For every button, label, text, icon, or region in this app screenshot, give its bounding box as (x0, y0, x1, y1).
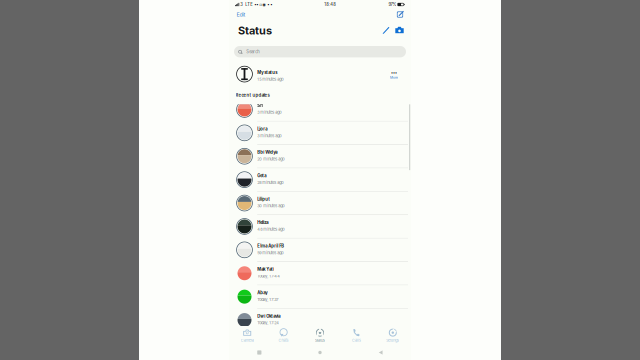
staticText: Status (238, 24, 272, 37)
staticText: Search (246, 49, 259, 54)
staticText: Dwi Oktavia (257, 314, 280, 319)
button[interactable]: Elma April FB (229, 238, 411, 262)
button[interactable]: Sri (229, 98, 411, 121)
staticText: 30 minutes ago (257, 203, 284, 208)
staticText: Chats (279, 338, 289, 343)
button[interactable]: Calls (338, 326, 375, 345)
button[interactable]: Recents (229, 345, 290, 360)
button[interactable]: Dwi Oktavia (229, 309, 411, 332)
staticText: 15 minutes ago (257, 77, 283, 82)
staticText: Today, 17:24 (257, 320, 279, 325)
button[interactable]: Geta (229, 168, 411, 192)
button[interactable]: Settings (375, 326, 411, 345)
button[interactable]: Bbi Widya (229, 145, 411, 168)
staticText: Mak Yati (257, 267, 274, 272)
button[interactable]: Search (234, 46, 406, 57)
button[interactable]: Ljora (229, 121, 411, 145)
staticText: Calls (352, 338, 361, 343)
staticText: Status (315, 338, 325, 343)
button[interactable]: Compose status (395, 10, 404, 19)
button[interactable]: Camera (229, 326, 265, 345)
staticText: 3 LTE (239, 2, 252, 7)
staticText: Today, 17:37 (257, 297, 278, 302)
button[interactable]: Camera status (395, 26, 404, 35)
button[interactable]: Back (350, 345, 411, 360)
staticText: Abay (257, 290, 267, 295)
staticText: Elma April FB (257, 243, 284, 248)
staticText: 20 minutes ago (257, 157, 284, 161)
staticText: ▪▪ ▫◉ ▪ ▪ (252, 2, 272, 7)
staticText: Ljora (257, 126, 267, 131)
button[interactable]: Abay (229, 285, 411, 309)
button[interactable]: Edit (235, 11, 246, 18)
staticText: Recent updates (236, 93, 270, 98)
staticText: 3 minutes ago (257, 110, 281, 115)
staticText: Bbi Widya (257, 150, 277, 155)
staticText: My status (257, 70, 277, 75)
staticText: ••• (391, 70, 397, 75)
staticText: Sri (257, 103, 263, 108)
staticText: Today, 17:44 (257, 274, 280, 278)
button[interactable]: Home (290, 345, 350, 360)
staticText: Edit (236, 11, 245, 18)
button[interactable]: Heliza (229, 215, 411, 238)
staticText: 97% (388, 2, 397, 7)
staticText: Heliza (257, 220, 268, 225)
button[interactable]: Write status (382, 26, 390, 34)
staticText: Camera (241, 338, 254, 343)
staticText: Liliput (257, 197, 270, 202)
staticText: More (390, 76, 398, 80)
button[interactable]: My status (229, 61, 411, 86)
staticText: 18:48 (324, 2, 336, 7)
staticText: Settings (386, 338, 399, 343)
staticText: 3 minutes ago (257, 133, 281, 138)
staticText: 59 minutes ago (257, 250, 283, 255)
button[interactable]: Chats (265, 326, 302, 345)
button[interactable]: Status (302, 326, 338, 345)
button[interactable]: Liliput (229, 192, 411, 215)
button[interactable]: Mak Yati (229, 262, 411, 285)
staticText: 48 minutes ago (257, 227, 284, 232)
staticText: Geta (257, 173, 266, 178)
staticText: 28 minutes ago (257, 180, 283, 185)
